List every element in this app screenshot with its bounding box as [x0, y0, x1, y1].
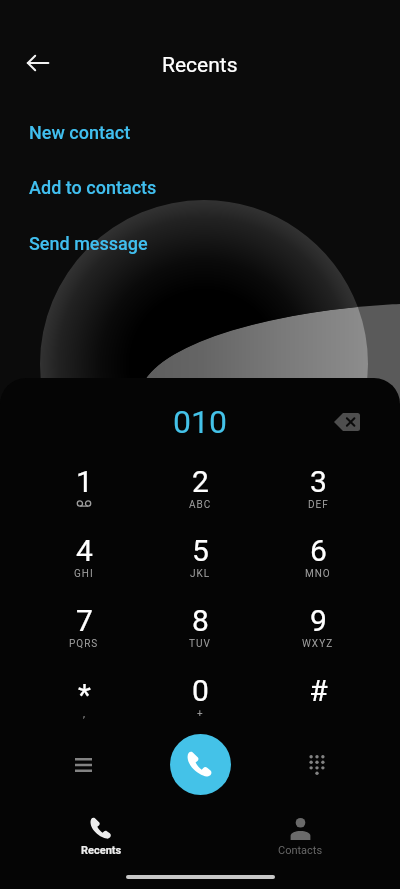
button[interactable]: 7: [28, 603, 140, 669]
button[interactable]: More options: [61, 743, 105, 787]
staticText: Contacts: [278, 844, 323, 857]
button[interactable]: 4: [28, 533, 140, 599]
staticText: New contact: [29, 122, 131, 143]
staticText: #: [309, 673, 328, 705]
staticText: 9: [310, 603, 327, 635]
staticText: 4: [76, 533, 93, 565]
staticText: 3: [310, 464, 327, 496]
staticText: GHI: [74, 568, 94, 580]
staticText: 1: [76, 464, 93, 496]
staticText: *: [78, 677, 91, 709]
button[interactable]: Send message: [0, 216, 400, 271]
staticText: 0: [192, 673, 209, 705]
staticText: Recents: [162, 53, 238, 78]
button[interactable]: Recents: [57, 817, 145, 873]
staticText: +: [197, 708, 204, 720]
staticText: WXYZ: [302, 638, 334, 650]
staticText: 7: [76, 603, 93, 635]
staticText: Add to contacts: [29, 177, 157, 198]
button[interactable]: 1: [28, 464, 140, 530]
staticText: 2: [192, 464, 209, 496]
button[interactable]: Contacts: [256, 817, 344, 873]
button[interactable]: #: [262, 673, 374, 739]
button[interactable]: Back: [14, 39, 62, 87]
staticText: 8: [192, 603, 209, 635]
staticText: 5: [192, 533, 209, 565]
button[interactable]: New contact: [0, 105, 400, 160]
button[interactable]: Add to contacts: [0, 160, 400, 215]
button[interactable]: Dialpad: [295, 742, 339, 786]
button[interactable]: 3: [262, 464, 374, 530]
staticText: 010: [173, 403, 227, 436]
button[interactable]: 9: [262, 603, 374, 669]
button[interactable]: *: [28, 673, 140, 739]
button[interactable]: 8: [144, 603, 256, 669]
button[interactable]: Backspace: [326, 401, 368, 443]
staticText: ABC: [189, 499, 212, 511]
staticText: DEF: [308, 499, 329, 511]
staticText: JKL: [190, 568, 211, 580]
button[interactable]: 2: [144, 464, 256, 530]
button[interactable]: Call: [170, 734, 231, 795]
button[interactable]: 6: [262, 533, 374, 599]
staticText: MNO: [305, 568, 331, 580]
staticText: TUV: [189, 638, 211, 650]
staticText: PQRS: [69, 638, 99, 650]
staticText: Recents: [81, 844, 122, 857]
button[interactable]: 0: [144, 673, 256, 739]
staticText: Send message: [29, 233, 148, 254]
staticText: ,: [83, 708, 86, 720]
staticText: 6: [310, 533, 327, 565]
button[interactable]: 5: [144, 533, 256, 599]
